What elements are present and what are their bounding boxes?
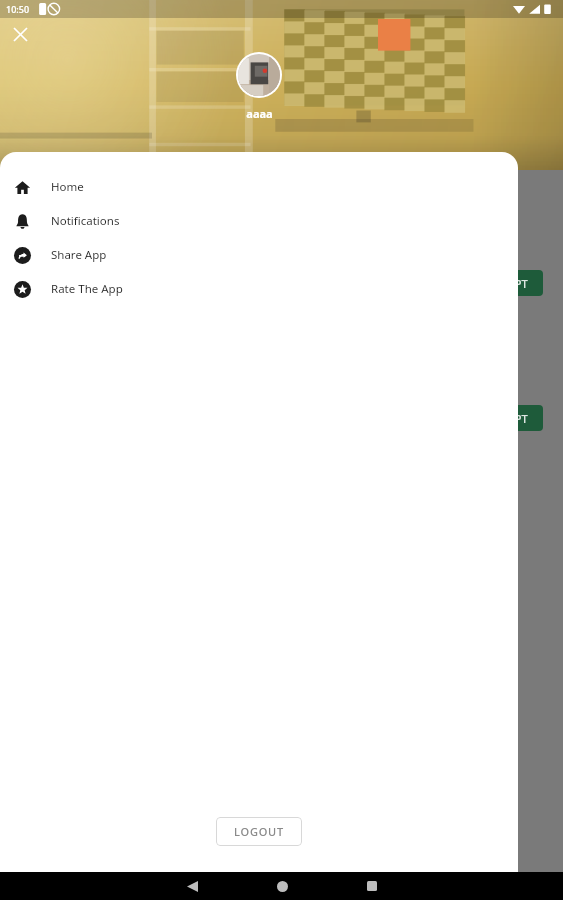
button[interactable]: Profile picture: [238, 54, 280, 96]
staticText: Rate The App: [51, 281, 123, 297]
button[interactable]: Back: [162, 872, 222, 900]
button[interactable]: Close: [6, 20, 34, 48]
staticText: ACCEPT: [488, 411, 528, 426]
staticText: 10:50: [6, 3, 30, 15]
button[interactable]: LOGOUT: [216, 817, 302, 846]
staticText: Home: [51, 179, 84, 195]
button[interactable]: Home: [252, 872, 312, 900]
button[interactable]: Home: [0, 170, 518, 204]
button[interactable]: Share App: [0, 238, 518, 272]
staticText: Share App: [51, 247, 107, 263]
button[interactable]: Recent apps: [342, 872, 402, 900]
staticText: ACCEPT: [488, 276, 528, 291]
button[interactable]: Notifications: [0, 204, 518, 238]
staticText: Notifications: [51, 213, 120, 229]
staticText: aaaa: [246, 106, 273, 121]
staticText: LOGOUT: [234, 824, 284, 839]
button[interactable]: Rate The App: [0, 272, 518, 306]
